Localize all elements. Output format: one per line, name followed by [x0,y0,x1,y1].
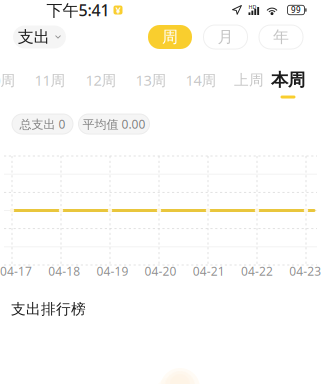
button[interactable]: 年 [259,25,303,49]
staticText: 99 [291,5,301,15]
button[interactable]: 支出 [13,25,66,48]
button[interactable]: 13周 [130,71,172,103]
button[interactable]: 月 [203,25,247,49]
staticText: 周 [162,27,178,47]
button[interactable]: 11周 [29,71,71,103]
staticText: 04-17 [0,263,32,279]
button[interactable]: 12周 [80,71,122,103]
staticText: 04-19 [96,263,128,279]
staticText: 支出 [18,27,50,47]
staticText: 下午5:41 [46,0,109,21]
staticText: 04-22 [241,263,273,279]
staticText: 平均值 0.00 [82,116,145,132]
staticText: 年 [273,27,289,47]
staticText: 本周 [271,69,305,91]
staticText: 04-23 [289,263,321,279]
button[interactable]: 0周 [0,71,25,103]
staticText: 11周 [34,70,65,90]
staticText: 13周 [135,70,166,90]
button[interactable]: 14周 [180,71,222,103]
staticText: 0周 [0,70,15,90]
staticText: 月 [217,27,233,47]
staticText: 04-20 [145,263,177,279]
staticText: 支出排行榜 [11,300,86,318]
button[interactable]: 本周 [267,71,309,103]
staticText: ¥ [115,4,120,16]
staticText: 04-18 [48,263,80,279]
staticText: 上周 [234,71,264,89]
staticText: 14周 [185,70,216,90]
staticText: 04-21 [193,263,225,279]
staticText: 12周 [85,70,116,90]
button[interactable]: 上周 [228,71,270,103]
button[interactable]: 周 [148,25,192,49]
staticText: 总支出 0 [19,116,65,132]
staticText: HD [248,3,256,11]
